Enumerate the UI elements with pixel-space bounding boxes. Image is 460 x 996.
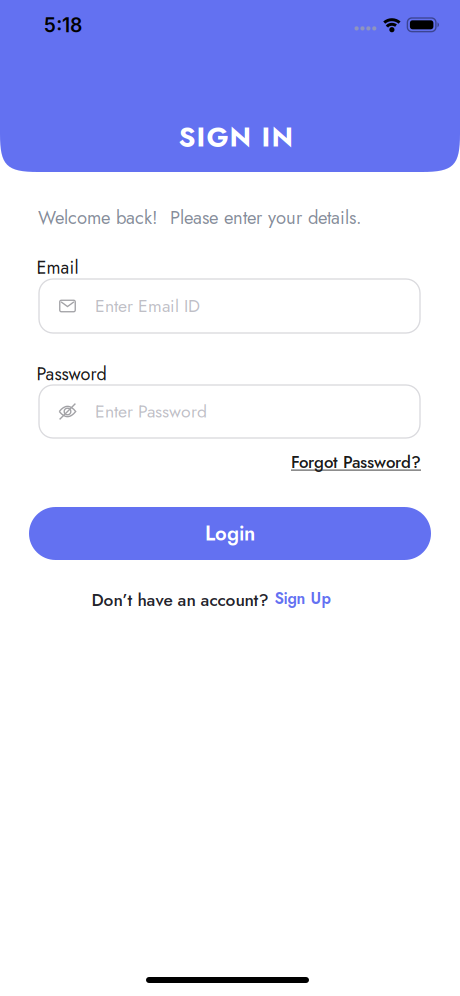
staticText: Sign Up [274,587,330,610]
staticText: Forgot Password? [291,450,421,474]
staticText: 5:18 [44,13,82,37]
staticText: Welcome back! Please enter your details. [38,204,362,231]
staticText: Email [36,254,78,280]
staticText: Enter Email ID [95,293,200,319]
staticText: Login [205,519,255,548]
staticText: Don’t have an account? [91,587,268,612]
button[interactable]: Forgot Password? [291,450,421,474]
staticText: Password [36,361,106,387]
button[interactable]: Enter Email ID [39,279,420,333]
button[interactable]: Sign Up [274,587,330,610]
button[interactable]: Enter Password [39,385,420,438]
staticText: SIGN IN [178,117,293,157]
button[interactable]: Login [29,507,431,560]
staticText: Enter Password [95,399,207,424]
